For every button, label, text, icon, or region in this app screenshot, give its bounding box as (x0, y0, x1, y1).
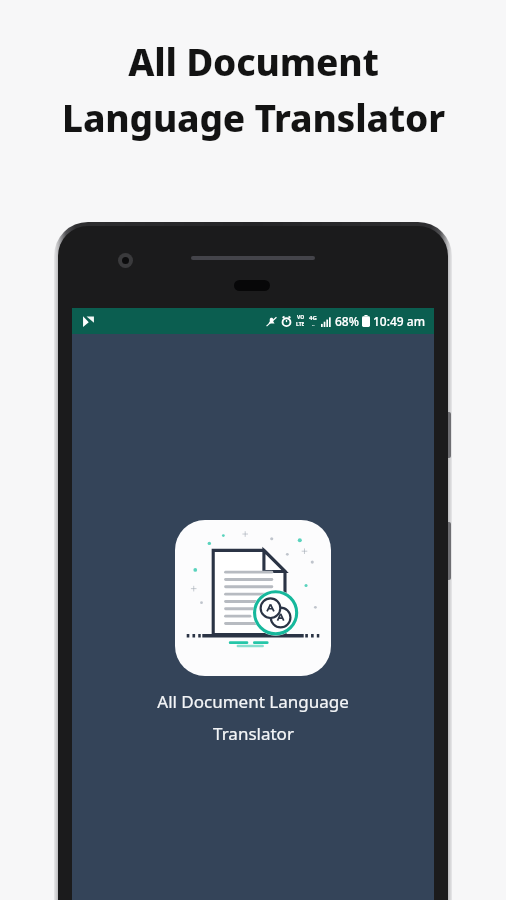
staticText: 68% (335, 313, 359, 329)
staticText: Translator (213, 722, 294, 745)
staticText: ·· (312, 322, 315, 329)
button[interactable]: App logo (175, 520, 331, 676)
staticText: All Document (128, 36, 379, 86)
staticText: VO (297, 314, 305, 321)
staticText: 10:49 am (373, 313, 426, 329)
staticText: All Document Language (157, 690, 349, 713)
staticText: 4G (309, 314, 317, 322)
staticText: LTE (296, 321, 305, 328)
staticText: Language Translator (62, 92, 445, 142)
